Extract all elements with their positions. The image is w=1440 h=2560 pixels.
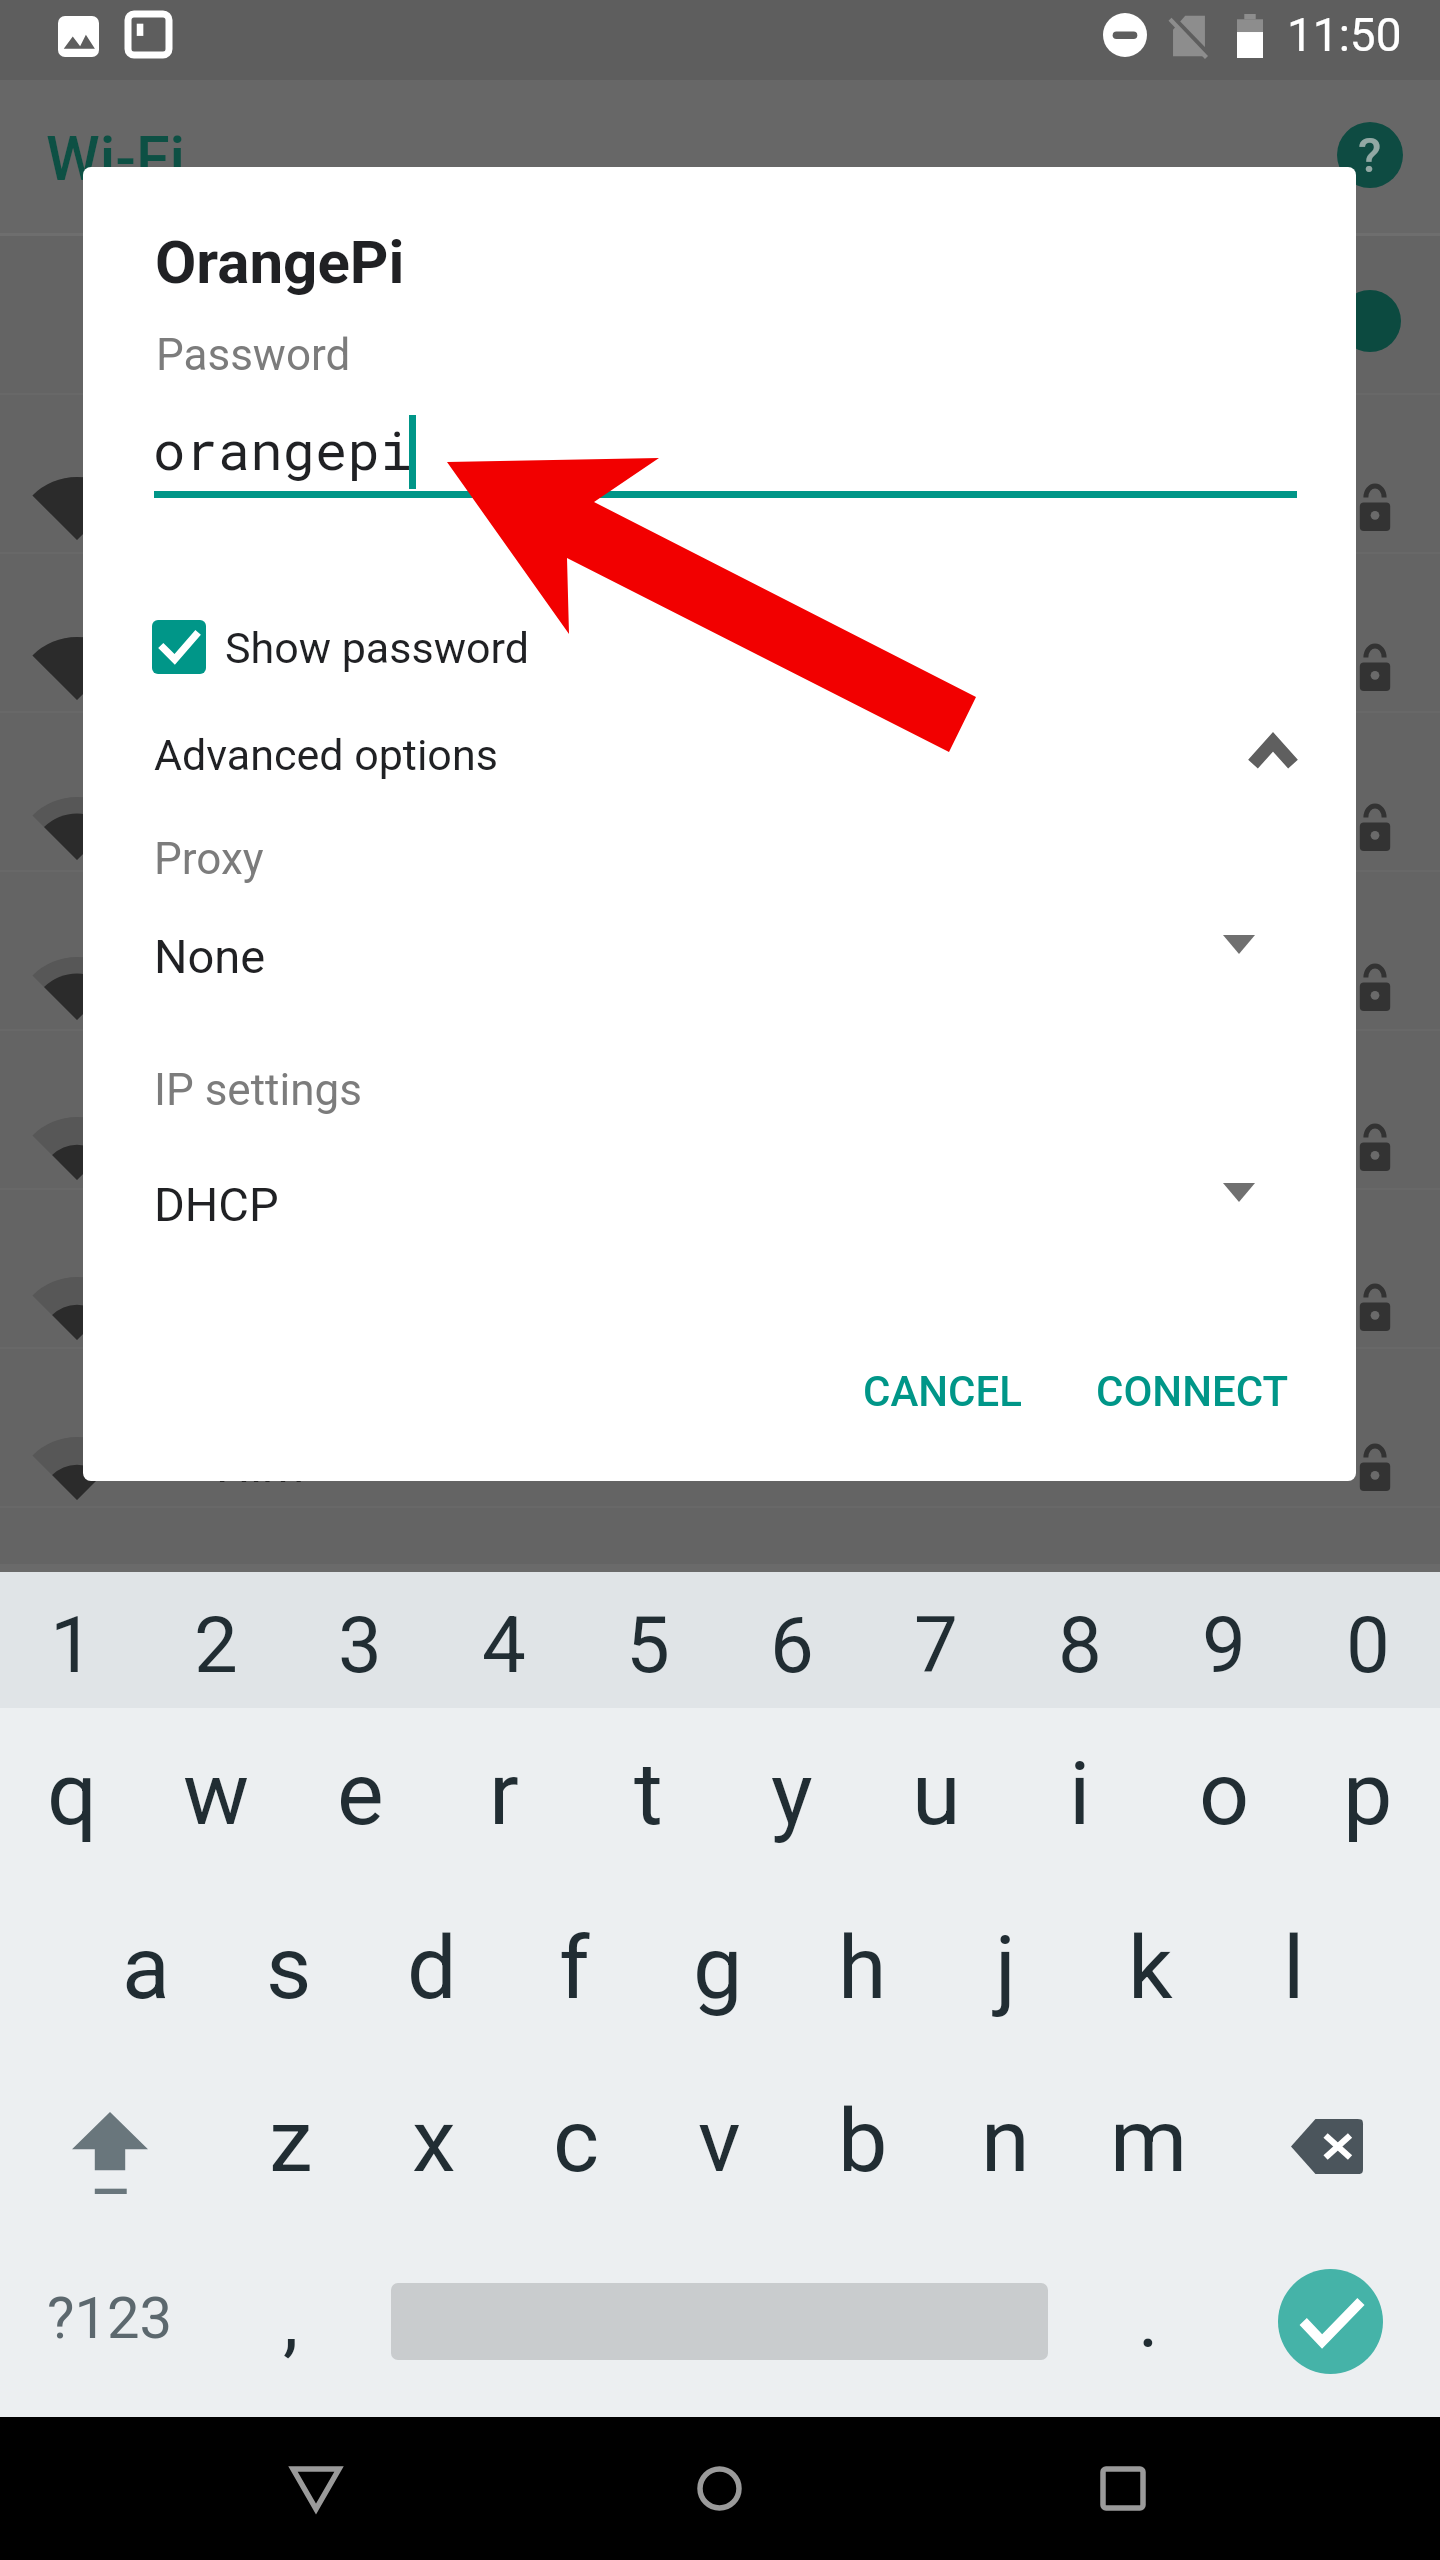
button[interactable]: 5 [576, 1572, 720, 1708]
staticText: c [553, 2089, 600, 2192]
button[interactable]: d [360, 1880, 503, 2054]
staticText: k [1128, 1916, 1173, 2019]
button[interactable]: Wi-Fi on [1339, 290, 1401, 352]
button[interactable]: Show password [135, 599, 655, 689]
staticText: m [1110, 2089, 1188, 2192]
staticText: Him [216, 1437, 305, 1493]
staticText: , [283, 2275, 299, 2366]
button[interactable]: h [790, 1880, 934, 2054]
button[interactable]: None [83, 905, 1356, 1001]
staticText: Show password [225, 623, 529, 673]
button[interactable]: p [1296, 1704, 1440, 1882]
staticText: Password [156, 329, 351, 381]
staticText: CONNECT [1096, 1367, 1289, 1416]
button[interactable]: Backspace [1220, 2053, 1440, 2227]
staticText: 4 [482, 1600, 526, 1691]
staticText: . [1138, 2275, 1159, 2366]
staticText: f [559, 1916, 590, 2019]
button[interactable]: 4 [432, 1572, 576, 1708]
staticText: q [47, 1742, 98, 1845]
button[interactable]: ?123 [0, 2234, 219, 2408]
button[interactable]: j [934, 1880, 1078, 2054]
staticText: Proxy [154, 833, 264, 885]
button[interactable]: 0 [1296, 1572, 1440, 1708]
staticText: 7 [914, 1600, 958, 1691]
staticText: Advanced options [154, 730, 498, 780]
button[interactable]: g [646, 1880, 790, 2054]
staticText: OrangePi [155, 227, 405, 297]
staticText: y [771, 1742, 813, 1845]
button[interactable]: 8 [1008, 1572, 1152, 1708]
staticText: t [634, 1742, 663, 1845]
staticText: l [1283, 1916, 1305, 2019]
staticText: ? [1358, 127, 1382, 183]
staticText: 0 [1346, 1600, 1390, 1691]
button[interactable]: 2 [144, 1572, 288, 1708]
button[interactable]: z [219, 2053, 362, 2227]
staticText: u [912, 1742, 961, 1845]
staticText: orangepi [153, 413, 413, 484]
staticText: None [154, 929, 266, 984]
button[interactable]: s [217, 1880, 360, 2054]
staticText: CANCEL [863, 1367, 1022, 1416]
button[interactable]: i [1008, 1704, 1152, 1882]
button[interactable]: 7 [864, 1572, 1008, 1708]
staticText: n [981, 2089, 1030, 2192]
button[interactable]: y [720, 1704, 864, 1882]
button[interactable]: a [74, 1880, 217, 2054]
staticText: z [269, 2089, 313, 2192]
button[interactable]: f [503, 1880, 646, 2054]
button[interactable]: t [576, 1704, 720, 1882]
button[interactable]: w [144, 1704, 288, 1882]
button[interactable]: u [864, 1704, 1008, 1882]
button[interactable]: 1 [0, 1572, 144, 1708]
staticText: s [266, 1916, 312, 2019]
button[interactable]: l [1222, 1880, 1366, 2054]
staticText: j [995, 1916, 1017, 2019]
button[interactable]: Back [223, 2417, 408, 2560]
button[interactable]: x [362, 2053, 505, 2227]
staticText: o [1199, 1742, 1250, 1845]
button[interactable]: Enter [1220, 2234, 1440, 2408]
button[interactable]: Recents [1030, 2417, 1215, 2560]
button[interactable]: Shift [0, 2053, 219, 2227]
staticText: Wi-Fi [46, 123, 186, 194]
button[interactable]: CONNECT [1056, 1336, 1329, 1446]
staticText: IP settings [154, 1064, 362, 1116]
button[interactable]: , [219, 2234, 362, 2408]
staticText: p [1343, 1742, 1393, 1845]
button[interactable]: v [648, 2053, 791, 2227]
button[interactable]: q [0, 1704, 144, 1882]
staticText: d [407, 1916, 457, 2019]
button[interactable]: 3 [288, 1572, 432, 1708]
button[interactable]: CANCEL [823, 1336, 1062, 1446]
button[interactable]: 9 [1152, 1572, 1296, 1708]
staticText: 11:50 [1287, 8, 1402, 62]
staticText: 2 [194, 1600, 238, 1691]
staticText: i [1069, 1742, 1091, 1845]
button[interactable]: e [288, 1704, 432, 1882]
staticText: w [183, 1742, 250, 1845]
staticText: x [412, 2089, 456, 2192]
button[interactable]: Home [627, 2417, 812, 2560]
staticText: 6 [770, 1600, 814, 1691]
button[interactable]: Advanced options [83, 705, 1356, 801]
button[interactable]: DHCP [83, 1153, 1356, 1249]
button[interactable]: Help [1337, 122, 1403, 188]
button[interactable]: r [432, 1704, 576, 1882]
button[interactable]: . [1077, 2234, 1220, 2408]
button[interactable]: m [1077, 2053, 1220, 2227]
staticText: v [698, 2089, 741, 2192]
staticText: g [693, 1916, 743, 2019]
button[interactable]: 6 [720, 1572, 864, 1708]
staticText: ?123 [47, 2284, 173, 2352]
staticText: DHCP [154, 1177, 279, 1232]
button[interactable]: k [1078, 1880, 1222, 2054]
button[interactable]: Space [362, 2234, 1077, 2408]
button[interactable]: o [1152, 1704, 1296, 1882]
button[interactable]: c [505, 2053, 648, 2227]
button[interactable]: n [934, 2053, 1077, 2227]
staticText: b [838, 2089, 888, 2192]
staticText: a [122, 1916, 170, 2019]
button[interactable]: b [791, 2053, 934, 2227]
